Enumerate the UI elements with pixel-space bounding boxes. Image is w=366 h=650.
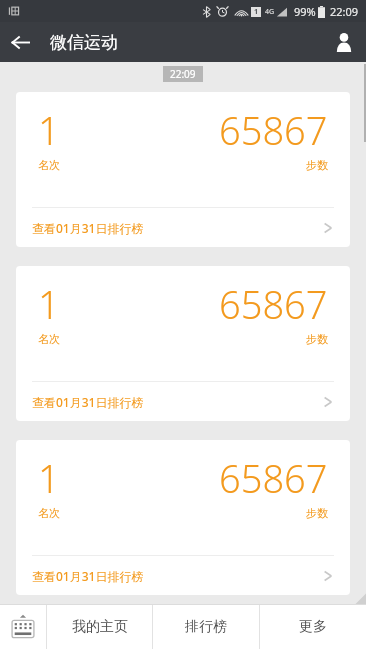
button[interactable]: Keyboard: [0, 604, 46, 650]
staticText: 名次: [38, 158, 60, 172]
staticText: 名次: [38, 332, 60, 346]
staticText: 1: [38, 104, 60, 156]
staticText: 查看01月31日排行榜: [32, 394, 144, 410]
staticText: 22:09: [170, 67, 196, 81]
staticText: 65867: [219, 104, 328, 156]
staticText: 查看01月31日排行榜: [32, 568, 144, 584]
button[interactable]: Back: [0, 22, 40, 62]
staticText: 99%: [294, 4, 316, 19]
staticText: 4G: [265, 7, 275, 17]
staticText: 步数: [306, 506, 328, 520]
staticText: 22:09: [330, 4, 359, 19]
button[interactable]: 更多: [260, 604, 366, 650]
staticText: 步数: [306, 158, 328, 172]
staticText: 微信运动: [50, 32, 118, 53]
staticText: 1: [254, 7, 259, 17]
staticText: 排行榜: [185, 618, 227, 636]
staticText: 步数: [306, 332, 328, 346]
button[interactable]: 查看01月31日排行榜: [16, 208, 350, 247]
staticText: 我的主页: [72, 618, 128, 636]
staticText: 名次: [38, 506, 60, 520]
button[interactable]: 我的主页: [47, 604, 152, 650]
staticText: 65867: [219, 278, 328, 330]
staticText: 65867: [219, 452, 328, 504]
staticText: 查看01月31日排行榜: [32, 220, 144, 236]
button[interactable]: Profile: [322, 22, 366, 62]
button[interactable]: 查看01月31日排行榜: [16, 556, 350, 595]
staticText: 1: [38, 278, 60, 330]
staticText: 1: [38, 452, 60, 504]
button[interactable]: 查看01月31日排行榜: [16, 382, 350, 421]
staticText: 更多: [299, 618, 327, 636]
button[interactable]: 排行榜: [153, 604, 259, 650]
